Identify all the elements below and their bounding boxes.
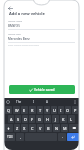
button[interactable]: P <box>72 106 78 114</box>
staticText: Z <box>16 126 19 131</box>
staticText: Enter vehicle model and make <box>8 44 39 47</box>
button[interactable]: Sticker <box>6 100 10 104</box>
staticText: The <box>16 100 22 104</box>
button[interactable]: M <box>61 124 68 132</box>
button[interactable]: More <box>73 100 77 104</box>
button[interactable]: I <box>58 106 64 114</box>
button[interactable]: R <box>29 106 36 114</box>
button[interactable]: F <box>29 115 35 123</box>
button[interactable]: O <box>65 106 71 114</box>
button[interactable]: L <box>68 115 75 123</box>
staticText: H <box>46 117 49 122</box>
button[interactable]: S <box>15 115 21 123</box>
staticText: E <box>23 108 26 113</box>
staticText: W <box>15 108 19 113</box>
staticText: N <box>55 126 58 131</box>
staticText: Mercedes Benz <box>8 37 30 41</box>
button[interactable]: J <box>52 115 59 123</box>
button[interactable]: Vehicle saved <box>9 85 75 94</box>
button[interactable]: N <box>53 124 60 132</box>
button[interactable]: B <box>45 124 52 132</box>
button[interactable]: K <box>60 115 67 123</box>
staticText: Vehicle Name <box>8 20 23 23</box>
staticText: L <box>70 117 73 122</box>
staticText: C <box>31 126 34 131</box>
staticText: A <box>46 100 48 104</box>
staticText: ?123 <box>7 135 13 139</box>
staticText: Vehicle Type <box>8 33 21 36</box>
staticText: O <box>66 108 70 113</box>
button[interactable]: C <box>29 124 36 132</box>
staticText: U <box>53 108 56 113</box>
button[interactable]: Backspace <box>69 124 79 132</box>
button[interactable]: Q <box>5 106 12 114</box>
button[interactable]: Z <box>14 124 20 132</box>
staticText: S <box>17 117 20 122</box>
button[interactable]: U <box>51 106 57 114</box>
button[interactable]: A <box>8 115 14 123</box>
staticText: , <box>20 135 21 139</box>
button[interactable]: E <box>21 106 28 114</box>
staticText: X <box>23 126 26 131</box>
button[interactable]: Y <box>44 106 50 114</box>
staticText: T <box>39 108 42 113</box>
staticText: Y <box>46 108 49 113</box>
staticText: Vehicle saved <box>34 88 55 92</box>
staticText: P <box>74 108 77 113</box>
staticText: BMW X5 <box>8 24 20 28</box>
button[interactable]: G <box>36 115 43 123</box>
staticText: R <box>31 108 34 113</box>
staticText: G <box>38 117 41 122</box>
button[interactable]: D <box>22 115 28 123</box>
button[interactable]: X <box>21 124 28 132</box>
staticText: D <box>24 117 27 122</box>
staticText: I <box>60 108 62 113</box>
staticText: M <box>63 126 67 131</box>
button[interactable]: Shift <box>4 124 13 132</box>
staticText: . <box>62 135 63 139</box>
staticText: B <box>47 126 50 131</box>
staticText: Q <box>7 108 11 113</box>
button[interactable]: Period <box>58 133 66 141</box>
staticText: J <box>55 117 57 122</box>
button[interactable]: Back <box>7 5 14 12</box>
button[interactable]: W <box>13 106 20 114</box>
button[interactable]: T <box>37 106 43 114</box>
button[interactable]: H <box>44 115 51 123</box>
staticText: F <box>31 117 34 122</box>
staticText: V <box>39 126 42 131</box>
staticText: Add a new vehicle <box>9 11 45 16</box>
button[interactable]: Enter <box>67 133 79 141</box>
button[interactable]: Comma <box>16 133 24 141</box>
staticText: I <box>33 100 35 104</box>
button[interactable]: V <box>37 124 44 132</box>
staticText: K <box>62 117 65 122</box>
button[interactable]: ?123 <box>4 133 15 141</box>
staticText: A <box>10 117 13 122</box>
